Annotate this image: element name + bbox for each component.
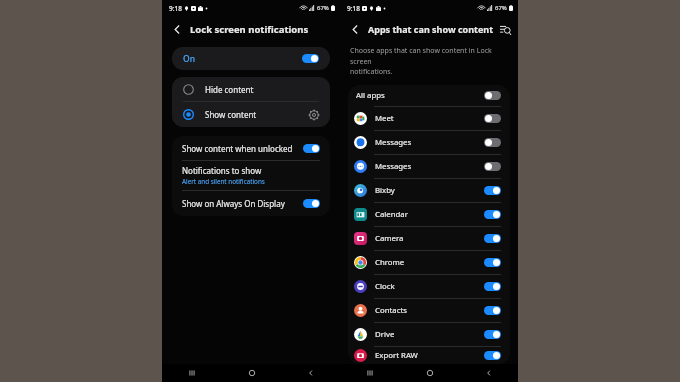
button[interactable]: Export RAW — [348, 347, 510, 364]
button[interactable]: On — [484, 330, 501, 339]
staticText: Meet — [375, 113, 394, 124]
staticText: All apps — [356, 90, 385, 101]
staticText: Alert and silent notifications — [182, 177, 265, 186]
staticText: On — [183, 53, 195, 65]
button[interactable]: Notifications to show — [172, 161, 330, 190]
staticText: Apps that can show content — [368, 23, 494, 35]
button[interactable]: Search — [498, 22, 512, 36]
button[interactable]: Camera — [348, 227, 510, 250]
staticText: Choose apps that can show content in Loc… — [350, 46, 508, 76]
button[interactable]: Show content when unlocked — [172, 136, 330, 160]
button[interactable]: On — [302, 54, 319, 63]
button[interactable]: On — [303, 144, 320, 153]
staticText: Lock screen notifications — [190, 23, 309, 36]
staticText: 9:18 — [169, 4, 182, 13]
staticText: Chrome — [375, 257, 405, 268]
button[interactable]: On — [484, 282, 501, 291]
button[interactable]: Off — [484, 162, 501, 171]
button[interactable]: Messages — [348, 131, 510, 154]
button[interactable]: All apps — [348, 85, 510, 106]
staticText: Messages — [375, 161, 412, 172]
button[interactable]: Back — [281, 364, 340, 382]
button[interactable]: Recents — [340, 364, 400, 382]
button[interactable]: On — [484, 234, 501, 243]
button[interactable]: Off — [484, 138, 501, 147]
staticText: Drive — [375, 329, 395, 340]
button[interactable]: On — [484, 210, 501, 219]
staticText: Show content when unlocked — [182, 143, 293, 154]
staticText: 9:18 — [347, 4, 360, 13]
staticText: Messages — [375, 137, 412, 148]
staticText: Hide content — [205, 84, 254, 95]
staticText: Clock — [375, 281, 395, 292]
button[interactable]: Off — [484, 114, 501, 123]
button[interactable]: Show content — [172, 102, 330, 127]
staticText: Bixby — [375, 185, 395, 196]
button[interactable]: Show on Always On Display — [172, 191, 330, 216]
button[interactable]: Back — [459, 364, 518, 382]
button[interactable]: On — [484, 186, 501, 195]
staticText: 67% — [495, 4, 507, 12]
button[interactable]: On — [303, 199, 320, 208]
staticText: Contacts — [375, 305, 407, 316]
staticText: Notifications to show — [182, 165, 262, 176]
button[interactable]: On — [484, 258, 501, 267]
button[interactable]: Off — [484, 91, 501, 100]
button[interactable]: Bixby — [348, 179, 510, 202]
button[interactable]: Hide content — [172, 77, 330, 101]
staticText: Calendar — [375, 209, 408, 220]
button[interactable]: Settings — [306, 107, 322, 123]
button[interactable]: Drive — [348, 323, 510, 346]
button[interactable]: Navigate up — [168, 20, 186, 38]
button[interactable]: Home — [400, 364, 459, 382]
button[interactable]: Recents — [162, 364, 222, 382]
button[interactable]: Navigate up — [346, 20, 364, 38]
button[interactable]: On — [172, 47, 330, 70]
staticText: 67% — [317, 4, 329, 12]
staticText: Camera — [375, 233, 404, 244]
button[interactable]: On — [484, 351, 501, 360]
button[interactable]: Home — [222, 364, 281, 382]
staticText: Export RAW — [375, 350, 418, 361]
staticText: Show on Always On Display — [182, 198, 285, 209]
staticText: Show content — [205, 109, 257, 120]
button[interactable]: Clock — [348, 275, 510, 298]
button[interactable]: Contacts — [348, 299, 510, 322]
button[interactable]: On — [484, 306, 501, 315]
button[interactable]: Messages — [348, 155, 510, 178]
button[interactable]: Meet — [348, 107, 510, 130]
button[interactable]: Calendar — [348, 203, 510, 226]
button[interactable]: Chrome — [348, 251, 510, 274]
